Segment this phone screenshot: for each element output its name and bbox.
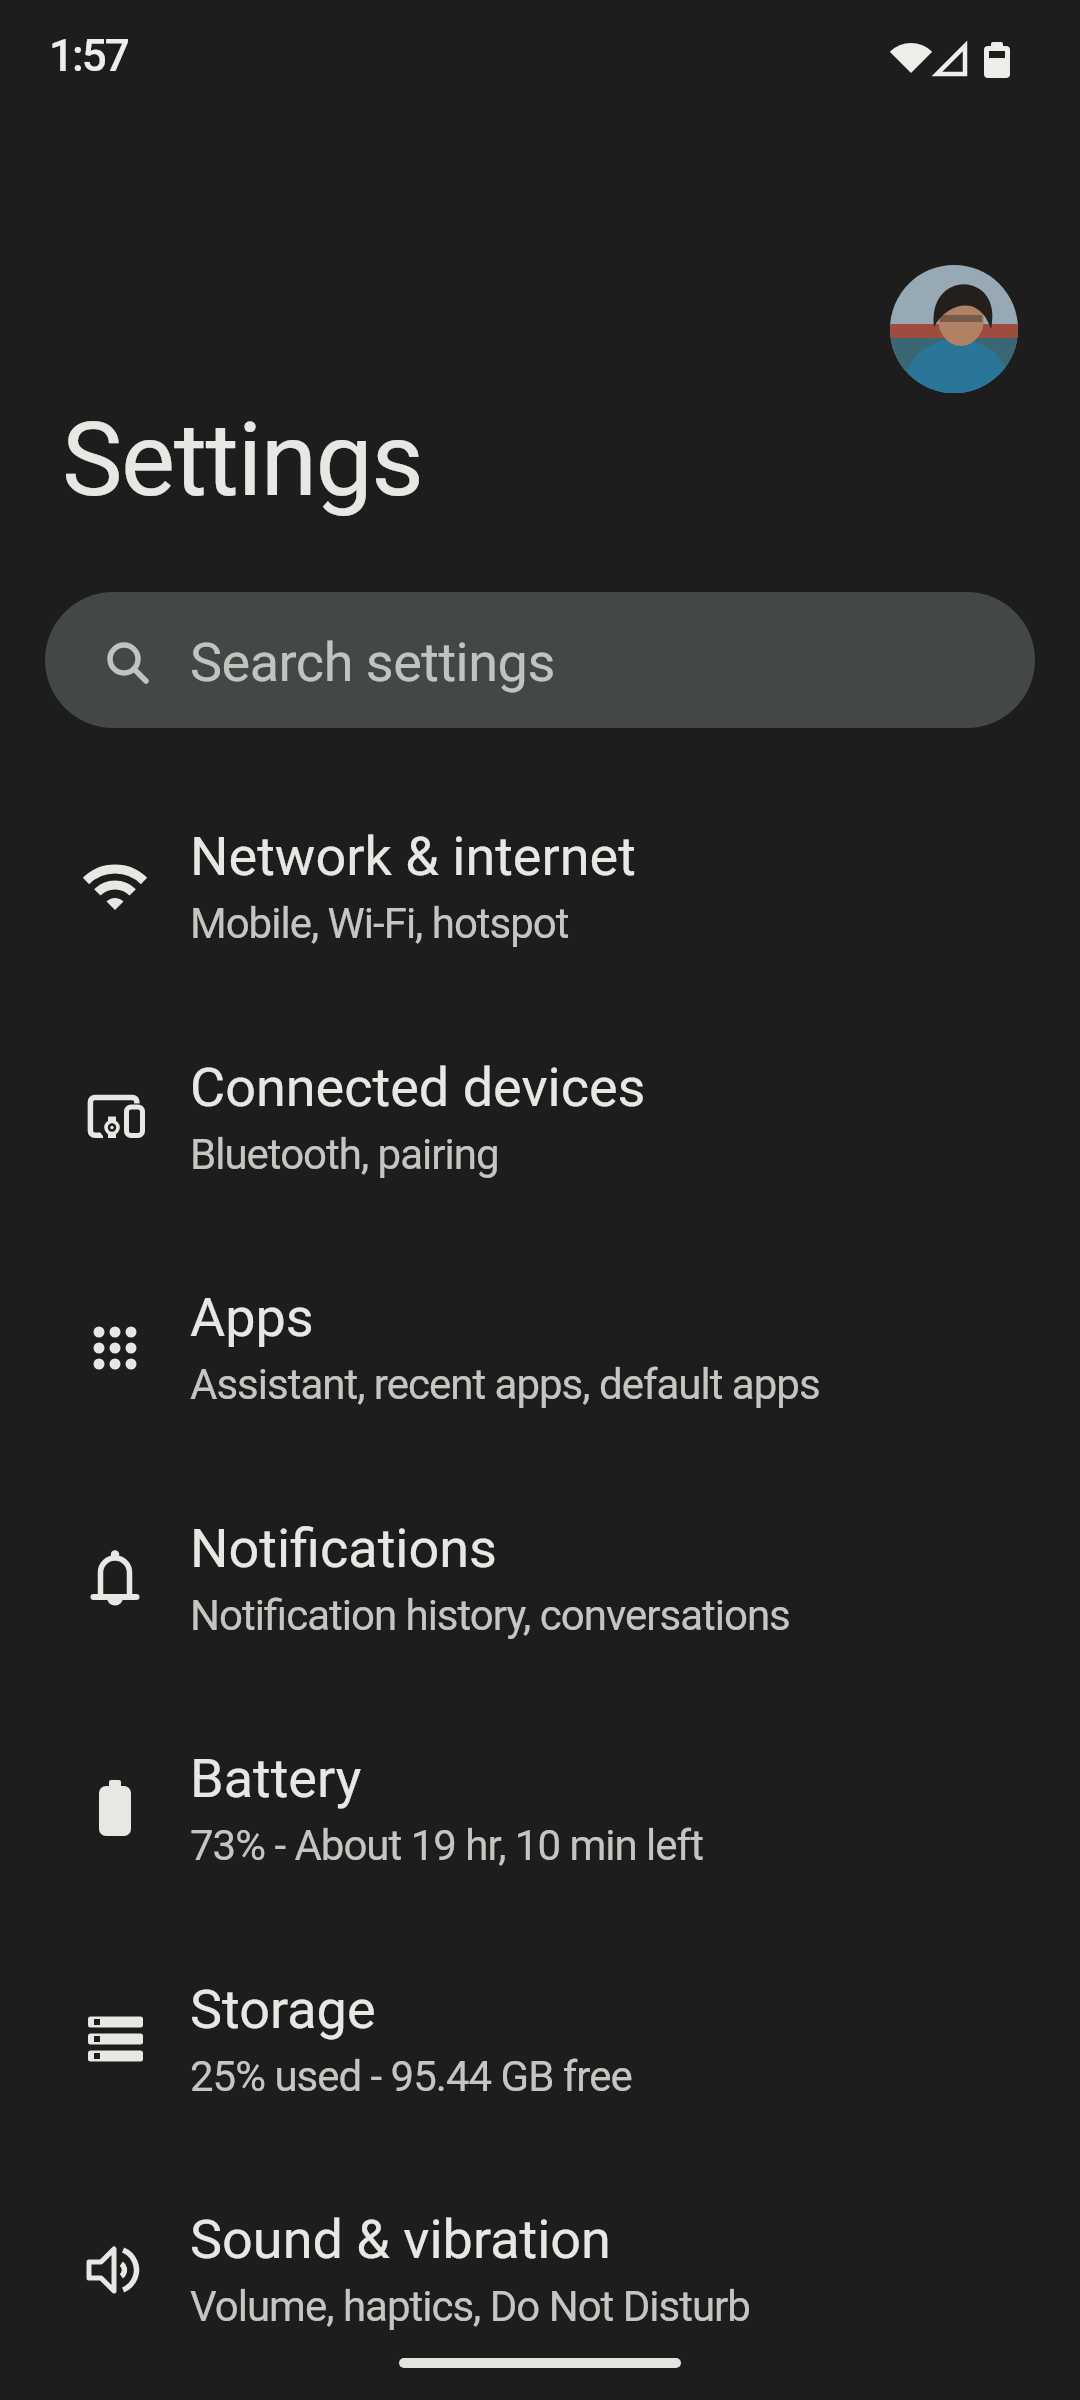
button[interactable]: Connected devices [0, 1001, 1080, 1231]
button[interactable]: Battery [0, 1692, 1080, 1922]
staticText: Network & internet [190, 825, 636, 888]
button[interactable] [45, 592, 1035, 728]
staticText: 25% used - 95.44 GB free [190, 2052, 632, 2101]
staticText: Volume, haptics, Do Not Disturb [190, 2282, 750, 2331]
staticText: Mobile, Wi-Fi, hotspot [190, 899, 569, 948]
staticText: Search settings [190, 631, 555, 694]
staticText: Notification history, conversations [190, 1591, 790, 1640]
button[interactable]: Storage [0, 1923, 1080, 2153]
staticText: Assistant, recent apps, default apps [190, 1360, 820, 1409]
staticText: Storage [190, 1978, 376, 2041]
staticText: 1:57 [49, 30, 128, 82]
button[interactable]: Network & internet [0, 770, 1080, 1000]
staticText: 73% - About 19 hr, 10 min left [190, 1821, 703, 1870]
staticText: Settings [62, 400, 423, 520]
button[interactable]: Apps [0, 1231, 1080, 1461]
staticText: Sound & vibration [190, 2208, 611, 2271]
staticText: Apps [190, 1286, 314, 1349]
staticText: Notifications [190, 1517, 497, 1580]
button[interactable]: Sound & vibration [0, 2153, 1080, 2383]
staticText: Connected devices [190, 1056, 646, 1119]
button[interactable]: Notifications [0, 1462, 1080, 1692]
staticText: Bluetooth, pairing [190, 1130, 499, 1179]
button[interactable] [890, 265, 1018, 393]
staticText: Battery [190, 1747, 362, 1810]
